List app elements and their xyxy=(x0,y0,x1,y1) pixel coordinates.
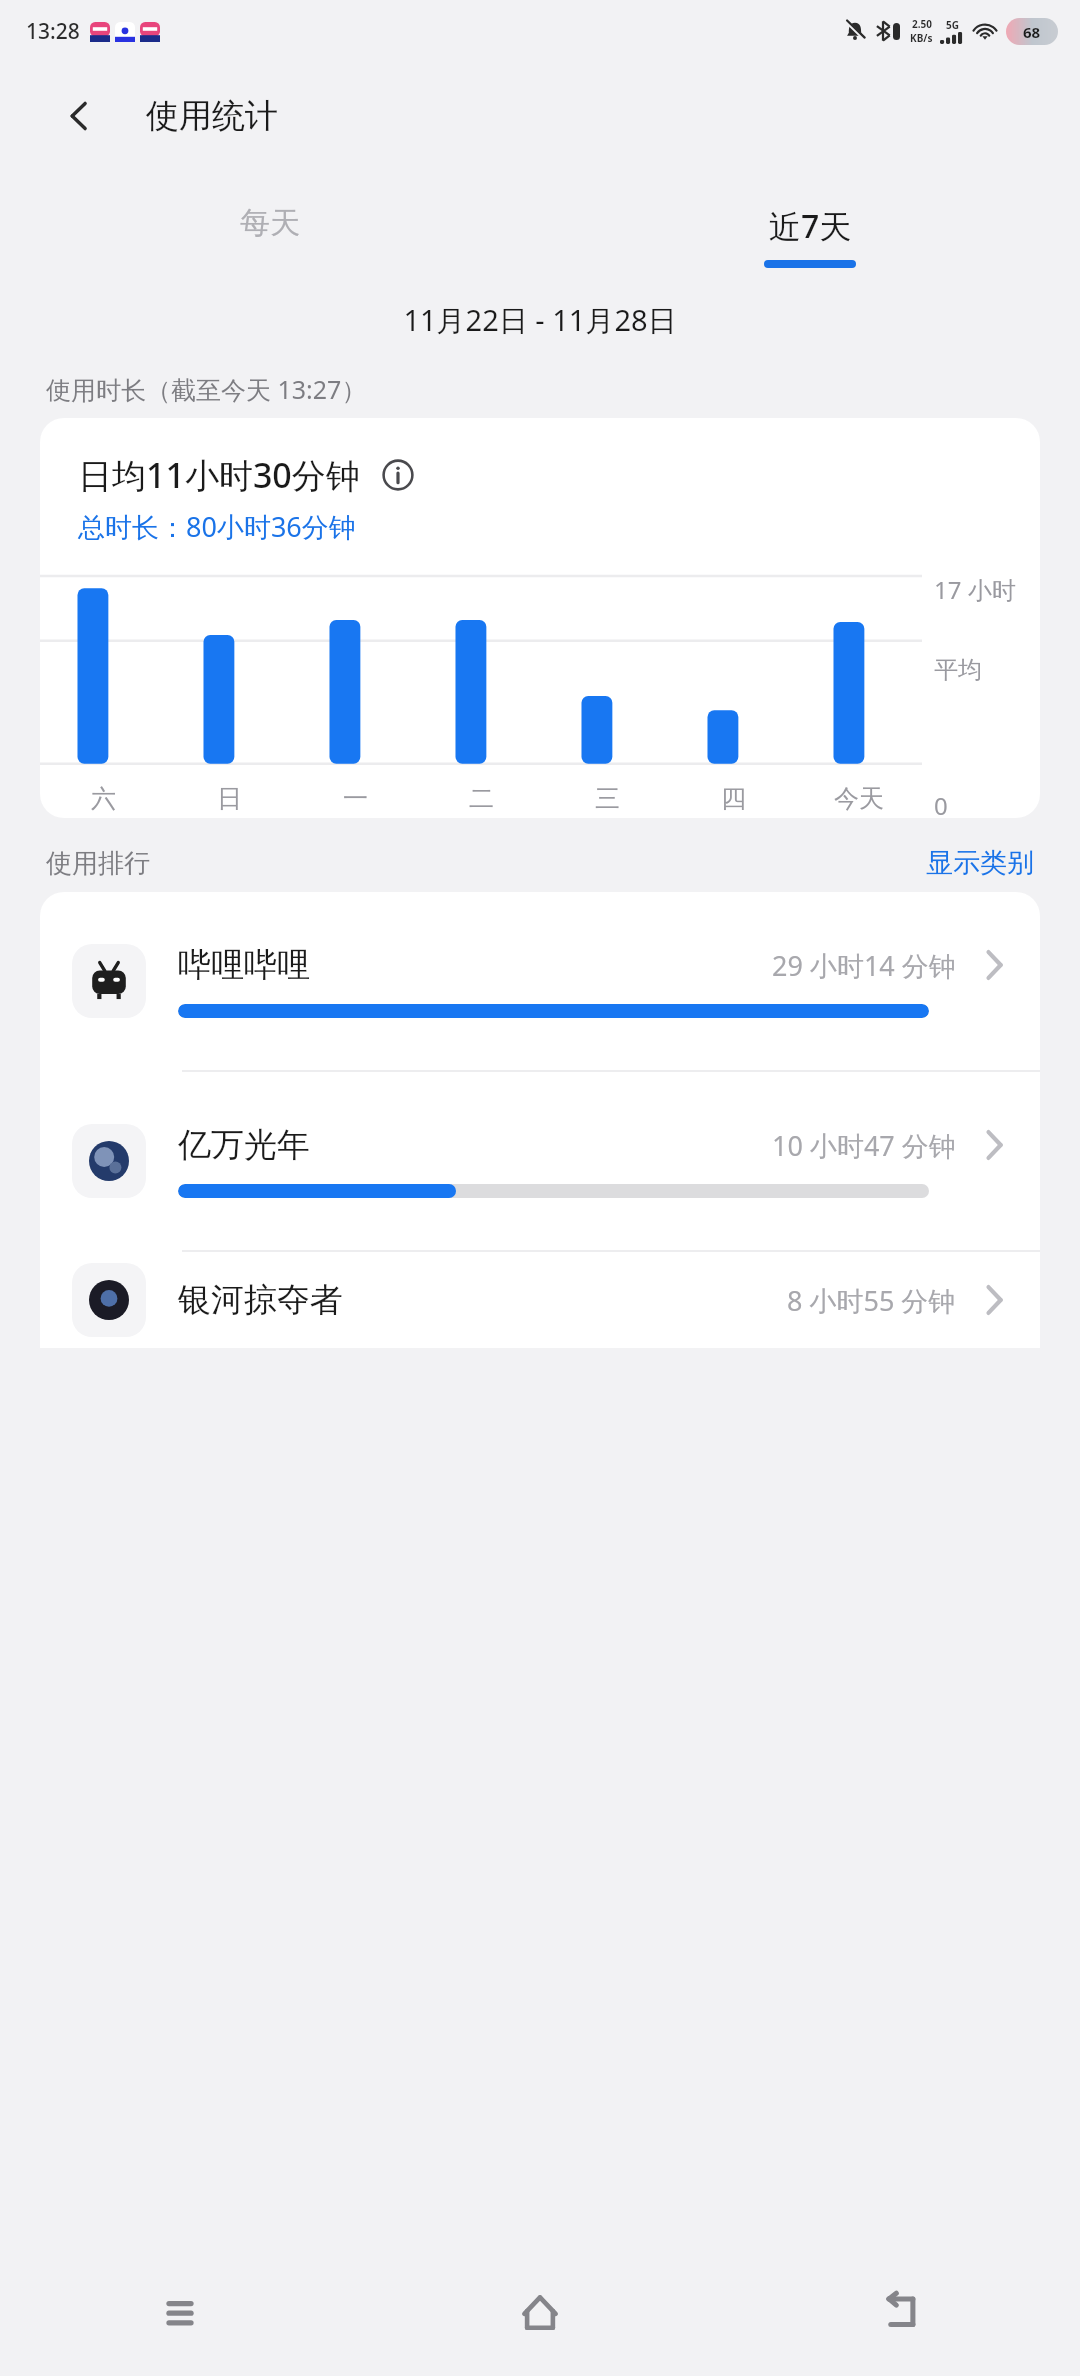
staticText: 亿万光年 xyxy=(178,1124,310,1166)
staticText: 四 xyxy=(721,783,746,814)
staticText: 哔哩哔哩 xyxy=(178,944,310,986)
staticText: 一 xyxy=(343,783,368,814)
staticText: 17 小时 xyxy=(934,573,1016,606)
staticText: 三 xyxy=(595,783,620,814)
staticText: 二 xyxy=(469,783,494,814)
staticText: 六 xyxy=(91,783,116,814)
staticText: 银河掠夺者 xyxy=(178,1279,343,1321)
staticText: 2.50 xyxy=(912,17,932,31)
button[interactable]: 银河掠夺者 xyxy=(40,1252,1040,1348)
staticText: 0 xyxy=(934,789,948,818)
button[interactable]: 每天 xyxy=(0,204,540,262)
button[interactable]: 亿万光年 xyxy=(40,1072,1040,1250)
staticText: 总时长：80小时36分钟 xyxy=(78,508,356,545)
other: Bluetooth xyxy=(875,20,891,42)
other: Silent mode xyxy=(844,20,866,42)
button[interactable]: Back xyxy=(720,2250,1080,2376)
staticText: 使用时长（截至今天 13:27） xyxy=(46,372,367,406)
staticText: 8 小时55 分钟 xyxy=(787,1282,956,1319)
staticText: 今天 xyxy=(834,783,884,814)
staticText: 近7天 xyxy=(769,204,852,248)
other: Wi-Fi xyxy=(972,21,998,41)
button[interactable]: 日均11小时30分钟 xyxy=(40,418,1040,818)
staticText: KB/s xyxy=(910,31,933,45)
staticText: 68 xyxy=(1023,22,1041,42)
button[interactable]: Recent apps xyxy=(0,2250,360,2376)
button[interactable]: Info xyxy=(378,455,418,495)
button[interactable]: Back xyxy=(46,83,112,149)
staticText: 11月22日 - 11月28日 xyxy=(403,300,677,340)
staticText: 日均11小时30分钟 xyxy=(78,452,360,498)
staticText: 平均 xyxy=(934,655,982,685)
staticText: 使用排行 xyxy=(46,847,150,880)
staticText: 使用统计 xyxy=(146,95,278,137)
button[interactable]: 近7天 xyxy=(540,204,1080,268)
staticText: 每天 xyxy=(240,204,300,242)
button[interactable]: Home xyxy=(360,2250,720,2376)
other: Details xyxy=(982,1128,1008,1162)
other: Details xyxy=(982,1283,1008,1317)
staticText: 13:28 xyxy=(26,17,80,46)
staticText: 10 小时47 分钟 xyxy=(772,1127,956,1164)
button[interactable]: 显示类别 xyxy=(926,846,1034,880)
other: Details xyxy=(982,948,1008,982)
staticText: 5G xyxy=(946,18,959,32)
button[interactable]: 哔哩哔哩 xyxy=(40,892,1040,1070)
staticText: 日 xyxy=(217,783,242,814)
staticText: 显示类别 xyxy=(926,846,1034,880)
staticText: 29 小时14 分钟 xyxy=(772,947,956,984)
